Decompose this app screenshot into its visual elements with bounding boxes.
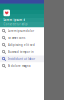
button[interactable]: Lorem ipsum dolor — [0, 27, 44, 34]
staticText: Et dolore magna — [8, 64, 30, 68]
button[interactable]: Et dolore magna — [0, 62, 44, 69]
button[interactable]: Incididunt ut labor — [0, 55, 44, 62]
staticText: Incididunt ut labor — [8, 57, 35, 61]
button[interactable]: Adipiscing elit sed — [0, 41, 44, 48]
staticText: Eiusmod tempor in — [8, 50, 34, 54]
staticText: Sit amet cons — [8, 36, 25, 40]
staticText: Lorem ipsum dolor — [8, 29, 34, 33]
staticText: Lorem ipsum d — [3, 18, 25, 22]
staticText: Consectetur adipi — [3, 22, 28, 26]
button[interactable]: Eiusmod tempor in — [0, 48, 44, 55]
button[interactable]: Sit amet cons — [0, 34, 44, 41]
staticText: Adipiscing elit sed — [8, 43, 35, 47]
